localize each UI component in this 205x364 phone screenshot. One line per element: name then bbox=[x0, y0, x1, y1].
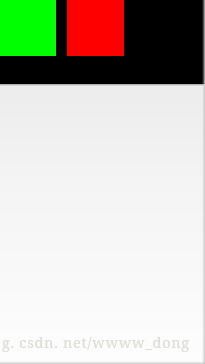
staticText: g. csdn. net/wwww_dong bbox=[2, 332, 190, 352]
